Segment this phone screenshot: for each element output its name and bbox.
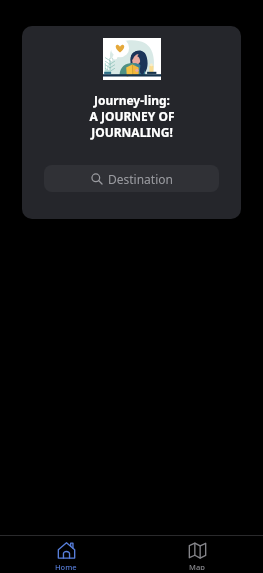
staticText: Destination: [108, 171, 173, 187]
button[interactable]: Destination: [44, 165, 219, 192]
staticText: Home: [55, 562, 77, 570]
staticText: Journey-ling: A JOURNEY OF JOURNALING!: [89, 92, 175, 140]
staticText: Map: [189, 562, 205, 570]
button[interactable]: Journey-ling: A JOURNEY OF JOURNALING!: [22, 26, 241, 219]
button[interactable]: Map: [166, 536, 228, 573]
button[interactable]: Home: [35, 536, 97, 573]
